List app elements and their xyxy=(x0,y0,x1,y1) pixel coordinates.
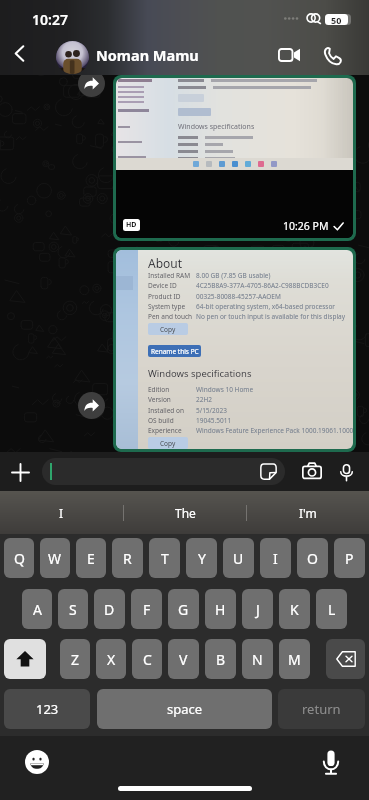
button[interactable]: S xyxy=(58,589,88,629)
staticText: A xyxy=(33,600,42,619)
staticText: 50 xyxy=(331,14,342,25)
staticText: K xyxy=(290,600,299,619)
staticText: R xyxy=(123,549,132,568)
button[interactable]: T xyxy=(149,538,180,578)
staticText: Q xyxy=(14,549,25,568)
button[interactable]: Voice message xyxy=(332,458,360,486)
button[interactable]: P xyxy=(334,538,365,578)
staticText: N xyxy=(252,650,263,669)
button[interactable]: U xyxy=(223,538,254,578)
staticText: Version xyxy=(148,395,196,404)
staticText: 10:27 xyxy=(32,10,68,29)
button[interactable]: I xyxy=(260,538,291,578)
staticText: J xyxy=(256,600,260,619)
button[interactable]: Forward xyxy=(78,392,105,419)
button[interactable]: J xyxy=(242,589,273,629)
button[interactable]: Video call xyxy=(270,36,308,74)
button[interactable]: B xyxy=(205,639,236,679)
button[interactable]: return xyxy=(278,689,365,729)
staticText: F xyxy=(143,600,151,619)
other: Stickers xyxy=(260,463,277,480)
button[interactable]: 123 xyxy=(4,689,90,729)
staticText: L xyxy=(328,600,336,619)
staticText: P xyxy=(345,549,354,568)
button[interactable]: X xyxy=(96,639,126,679)
staticText: Windows specifications xyxy=(178,122,255,132)
button[interactable]: H xyxy=(205,589,236,629)
button[interactable]: E xyxy=(76,538,106,578)
button[interactable]: M xyxy=(279,639,310,679)
button[interactable]: G xyxy=(168,589,199,629)
button[interactable]: F xyxy=(131,589,162,629)
staticText: W xyxy=(48,549,62,568)
button[interactable]: W xyxy=(40,538,70,578)
staticText: System type xyxy=(148,302,196,311)
staticText: OS build xyxy=(148,416,196,425)
button[interactable]: C xyxy=(132,639,162,679)
button[interactable]: I'm xyxy=(247,491,369,534)
button[interactable]: space xyxy=(97,689,272,729)
button[interactable]: I xyxy=(0,491,123,534)
staticText: 5/15/2023 xyxy=(196,406,227,415)
staticText: 123 xyxy=(36,700,59,718)
button[interactable]: D xyxy=(94,589,125,629)
button[interactable]: R xyxy=(112,538,143,578)
staticText: X xyxy=(107,650,116,669)
button[interactable]: Voice call xyxy=(313,36,351,74)
button[interactable]: K xyxy=(279,589,310,629)
staticText: 10:26 PM xyxy=(283,219,329,233)
staticText: E xyxy=(87,549,95,568)
staticText: V xyxy=(179,650,188,669)
staticText: HD xyxy=(126,220,137,230)
button[interactable]: Dictate xyxy=(322,750,340,775)
button[interactable]: L xyxy=(316,589,347,629)
staticText: 00325-80088-45257-AAOEM xyxy=(196,292,281,301)
button[interactable]: Q xyxy=(4,538,34,578)
button[interactable]: Emoji xyxy=(25,750,49,774)
staticText: S xyxy=(69,600,77,619)
staticText: I'm xyxy=(299,505,317,521)
staticText: Edition xyxy=(148,385,196,394)
button[interactable]: Forward xyxy=(78,70,105,97)
button[interactable]: Windows specifications xyxy=(116,78,353,238)
button[interactable]: Attach xyxy=(6,458,34,486)
staticText: O xyxy=(307,549,318,568)
button[interactable]: Rename this PC xyxy=(148,345,201,357)
button[interactable]: About xyxy=(116,250,353,449)
staticText: Copy xyxy=(160,439,176,448)
staticText: Pen and touch xyxy=(148,312,196,321)
staticText: Device ID xyxy=(148,281,196,290)
staticText: I xyxy=(59,505,64,521)
staticText: T xyxy=(161,549,169,568)
button[interactable]: Backspace xyxy=(326,639,365,679)
staticText: No pen or touch input is available for t… xyxy=(196,312,346,321)
button[interactable]: O xyxy=(297,538,328,578)
staticText: B xyxy=(216,650,226,669)
button[interactable]: Copy xyxy=(148,437,188,449)
button[interactable]: V xyxy=(168,639,199,679)
staticText: space xyxy=(167,700,203,718)
button[interactable]: Camera xyxy=(298,458,326,486)
button[interactable]: Copy xyxy=(148,323,188,335)
button[interactable]: Stickers xyxy=(42,458,285,485)
button[interactable]: Y xyxy=(186,538,217,578)
staticText: 4C25B8A9-377A-4705-86A2-C988BCDB3CE0 xyxy=(196,281,329,290)
button[interactable]: Back xyxy=(0,34,38,72)
staticText: D xyxy=(104,600,115,619)
staticText: 8.00 GB (7.85 GB usable) xyxy=(196,271,271,280)
button[interactable]: Shift xyxy=(4,639,46,679)
staticText: return xyxy=(302,700,341,718)
staticText: M xyxy=(288,650,301,669)
staticText: Installed RAM xyxy=(148,271,196,280)
staticText: Windows specifications xyxy=(148,367,252,380)
button[interactable]: The xyxy=(124,491,246,534)
button[interactable]: A xyxy=(22,589,52,629)
staticText: I xyxy=(273,549,278,568)
staticText: About xyxy=(148,255,183,271)
staticText: U xyxy=(233,549,244,568)
button[interactable]: N xyxy=(242,639,273,679)
staticText: Product ID xyxy=(148,292,196,301)
staticText: Windows Feature Experience Pack 1000.190… xyxy=(196,426,353,435)
staticText: Installed on xyxy=(148,406,196,415)
button[interactable]: Z xyxy=(60,639,90,679)
